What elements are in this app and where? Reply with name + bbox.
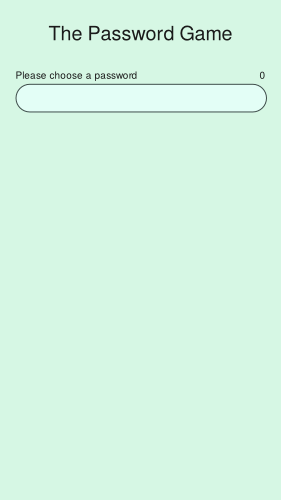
staticText: 0	[259, 67, 265, 82]
staticText: The Password Game	[48, 17, 232, 46]
staticText: Please choose a password	[15, 67, 137, 82]
button[interactable]: Password	[15, 84, 267, 112]
